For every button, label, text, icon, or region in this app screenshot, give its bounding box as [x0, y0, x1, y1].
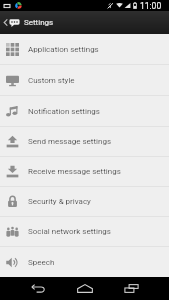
staticText: Social network settings: [28, 227, 111, 236]
button[interactable]: Settings: [0, 11, 169, 34]
button[interactable]: Send message settings: [0, 127, 169, 156]
staticText: Notification settings: [28, 107, 100, 116]
button[interactable]: Recents: [108, 277, 155, 300]
button[interactable]: Notification settings: [0, 96, 169, 126]
button[interactable]: Custom style: [0, 65, 169, 95]
staticText: Speech: [28, 258, 55, 267]
button[interactable]: Application settings: [0, 34, 169, 64]
staticText: Application settings: [28, 45, 99, 54]
staticText: Receive message settings: [28, 167, 121, 176]
button[interactable]: Speech: [0, 247, 169, 277]
staticText: Custom style: [28, 76, 75, 85]
button[interactable]: Security & privacy: [0, 187, 169, 216]
button[interactable]: Back: [14, 277, 61, 300]
button[interactable]: Social network settings: [0, 217, 169, 246]
staticText: 11:00: [140, 1, 162, 11]
staticText: Settings: [24, 18, 54, 27]
staticText: Send message settings: [28, 137, 112, 146]
staticText: Security & privacy: [28, 197, 91, 206]
button[interactable]: Receive message settings: [0, 157, 169, 186]
button[interactable]: Home: [61, 277, 108, 300]
